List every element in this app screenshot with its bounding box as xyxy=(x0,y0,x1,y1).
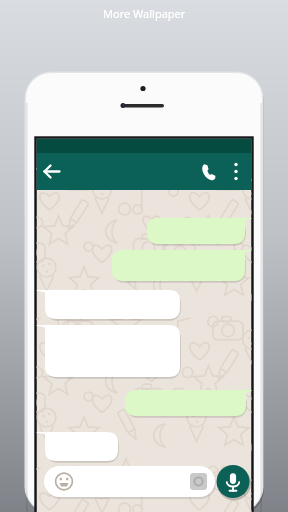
button[interactable]: More options xyxy=(226,158,248,180)
button[interactable]: Emoji xyxy=(53,471,75,493)
button[interactable]: Back xyxy=(42,158,66,182)
button[interactable]: Call xyxy=(199,158,223,182)
button[interactable]: Voice message xyxy=(216,465,250,499)
button[interactable]: Camera xyxy=(189,472,209,492)
button[interactable]: More Wallpaper xyxy=(103,6,186,21)
